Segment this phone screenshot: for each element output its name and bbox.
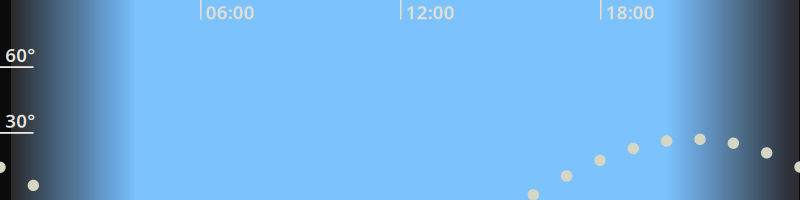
staticText: 12:00 — [405, 0, 454, 24]
staticText: 18:00 — [605, 0, 654, 24]
staticText: 06:00 — [205, 0, 254, 24]
staticText: 30° — [5, 108, 35, 133]
staticText: 60° — [5, 42, 35, 67]
